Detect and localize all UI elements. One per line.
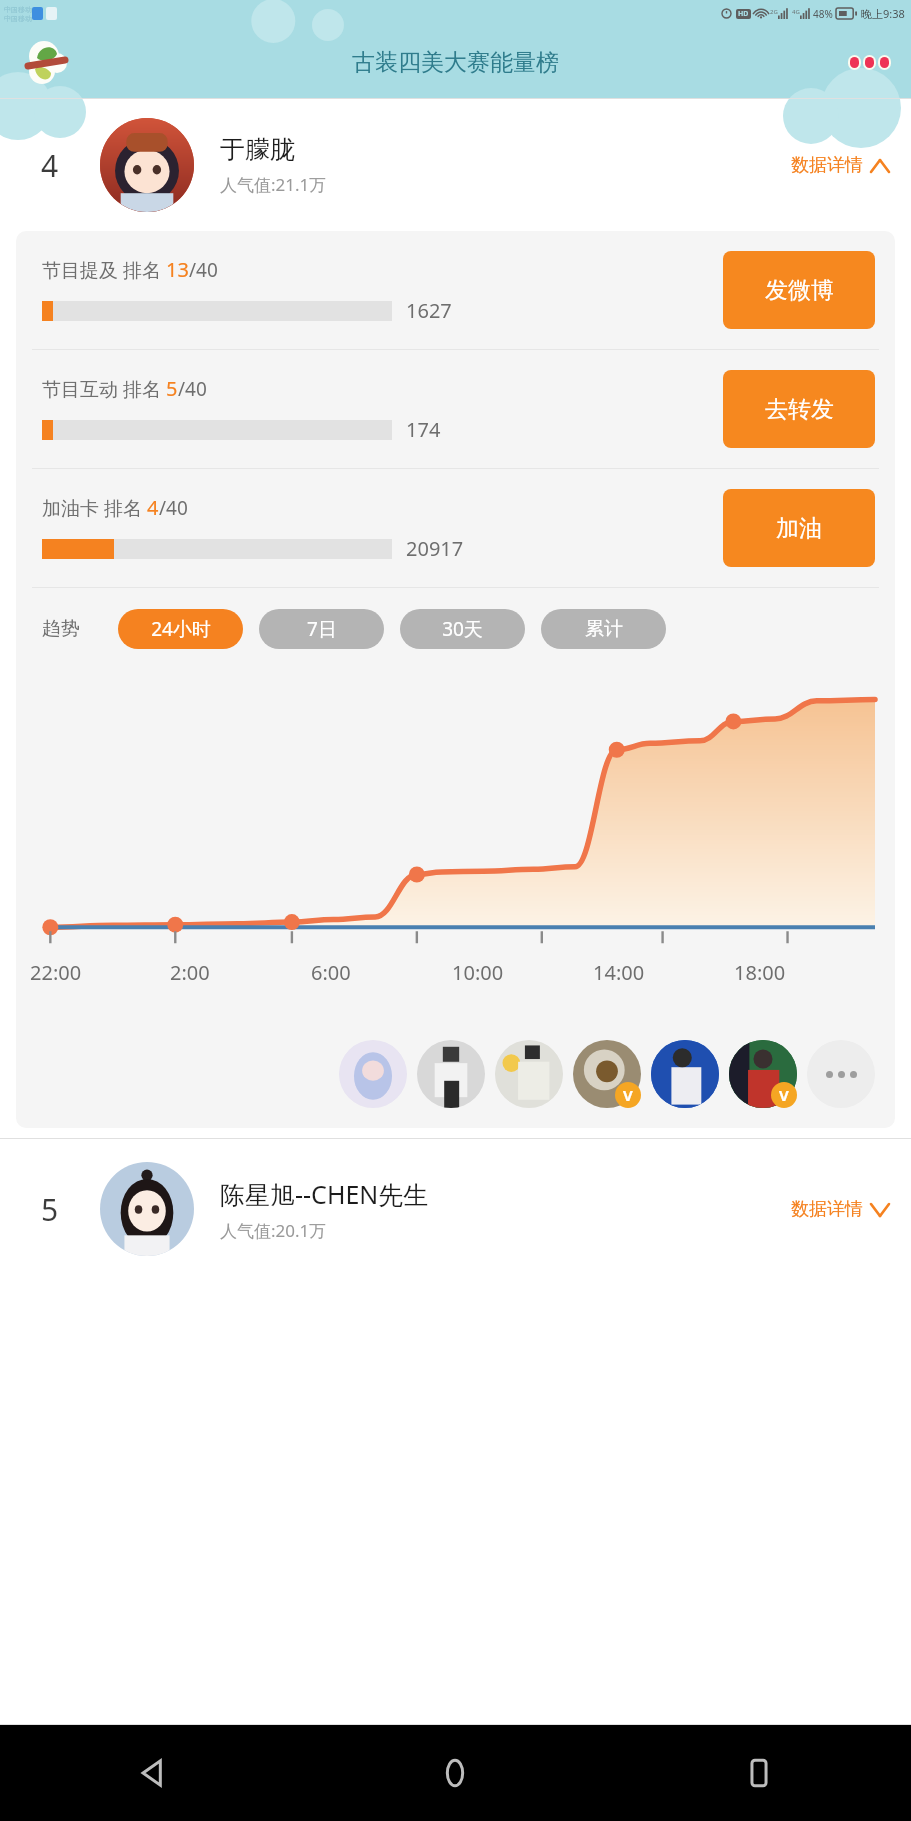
staticText: 6:00 — [311, 959, 351, 986]
button[interactable]: Back — [0, 1725, 303, 1821]
button[interactable]: 数据详情 — [791, 154, 889, 177]
staticText: V — [623, 1085, 633, 1105]
button[interactable]: 4 — [0, 99, 911, 231]
staticText: 4 — [41, 145, 59, 186]
staticText: 人气值:20.1万 — [220, 1219, 327, 1242]
button[interactable]: 发微博 — [723, 251, 875, 329]
button[interactable]: 加油 — [723, 489, 875, 567]
staticText: 18:00 — [734, 959, 786, 986]
staticText: 数据详情 — [791, 154, 863, 177]
button[interactable] — [417, 1040, 485, 1108]
staticText: 174 — [406, 416, 441, 443]
staticText: 4G — [792, 8, 800, 16]
staticText: 24小时 — [151, 616, 211, 642]
staticText: 5 — [41, 1189, 59, 1230]
staticText: 节目互动 排名 — [42, 376, 166, 402]
staticText: /40 — [178, 376, 207, 402]
staticText: 中国移动 — [4, 14, 32, 23]
staticText: 数据详情 — [791, 1198, 863, 1221]
staticText: 4 — [147, 494, 159, 521]
staticText: 中国移动 — [4, 5, 32, 14]
staticText: 22:00 — [30, 959, 82, 986]
button[interactable] — [651, 1040, 719, 1108]
button[interactable]: More fans — [807, 1040, 875, 1108]
staticText: 10:00 — [452, 959, 504, 986]
staticText: 7日 — [307, 616, 337, 642]
staticText: 2:00 — [170, 959, 210, 986]
button[interactable]: Home — [303, 1725, 607, 1821]
button[interactable] — [495, 1040, 563, 1108]
button[interactable]: 7日 — [259, 609, 384, 649]
staticText: 5 — [166, 375, 178, 402]
staticText: 陈星旭--CHEN先生 — [220, 1177, 429, 1211]
staticText: 2G — [770, 8, 778, 16]
staticText: /40 — [189, 257, 218, 283]
button[interactable]: 累计 — [541, 609, 666, 649]
button[interactable]: 24小时 — [118, 609, 243, 649]
staticText: 加油 — [776, 514, 822, 543]
button[interactable]: Recent apps — [607, 1725, 911, 1821]
staticText: 48% — [813, 7, 833, 21]
staticText: /40 — [159, 495, 188, 521]
staticText: 20917 — [406, 535, 464, 562]
button[interactable] — [339, 1040, 407, 1108]
staticText: 于朦胧 — [220, 134, 295, 165]
button[interactable]: Logo — [20, 36, 74, 90]
button[interactable]: 5 — [0, 1139, 911, 1279]
staticText: 晚上9:38 — [861, 6, 905, 21]
button[interactable]: V — [729, 1040, 797, 1108]
button[interactable]: More options — [848, 55, 891, 70]
staticText: 古装四美大赛能量榜 — [352, 48, 559, 77]
staticText: 30天 — [442, 616, 483, 642]
staticText: 累计 — [585, 617, 623, 641]
button[interactable]: 数据详情 — [791, 1198, 889, 1221]
staticText: 去转发 — [765, 395, 834, 424]
button[interactable]: V — [573, 1040, 641, 1108]
staticText: V — [779, 1085, 789, 1105]
staticText: 13 — [166, 256, 189, 283]
staticText: 14:00 — [593, 959, 645, 986]
button[interactable]: 去转发 — [723, 370, 875, 448]
staticText: 人气值:21.1万 — [220, 173, 327, 196]
staticText: 发微博 — [765, 276, 834, 305]
staticText: 节目提及 排名 — [42, 257, 166, 283]
button[interactable]: 30天 — [400, 609, 525, 649]
staticText: 加油卡 排名 — [42, 495, 147, 521]
staticText: 趋势 — [42, 617, 80, 641]
staticText: HD — [738, 9, 749, 19]
staticText: 1627 — [406, 297, 452, 324]
